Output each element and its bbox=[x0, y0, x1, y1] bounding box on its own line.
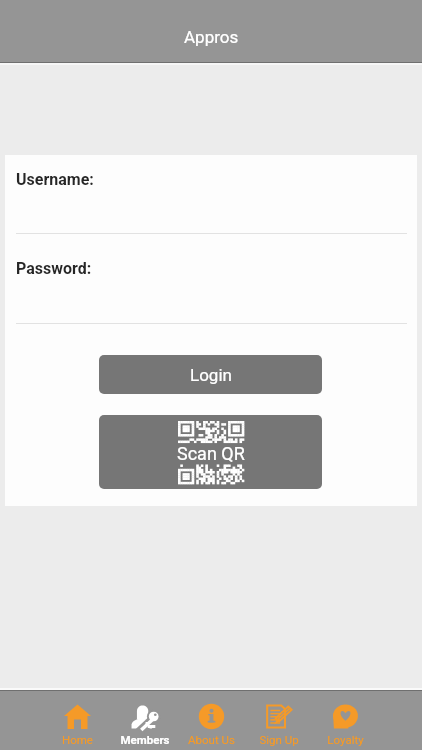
button[interactable]: Scan QR bbox=[99, 415, 322, 489]
staticText: About Us bbox=[188, 733, 235, 746]
button[interactable]: Loyalty bbox=[312, 691, 379, 750]
button[interactable]: Home bbox=[44, 691, 111, 750]
button[interactable]: About Us bbox=[178, 691, 245, 750]
button[interactable]: Login bbox=[99, 355, 322, 394]
staticText: Appros bbox=[184, 27, 239, 47]
button[interactable]: Sign Up bbox=[245, 691, 312, 750]
staticText: Login bbox=[190, 365, 232, 385]
staticText: Scan QR bbox=[177, 443, 245, 464]
staticText: Home bbox=[62, 733, 93, 746]
staticText: Members bbox=[120, 733, 170, 746]
button[interactable]: Members bbox=[111, 691, 178, 750]
staticText: Username: bbox=[16, 170, 94, 189]
staticText: Sign Up bbox=[259, 733, 299, 746]
staticText: Loyalty bbox=[327, 733, 364, 746]
staticText: Password: bbox=[16, 259, 92, 278]
